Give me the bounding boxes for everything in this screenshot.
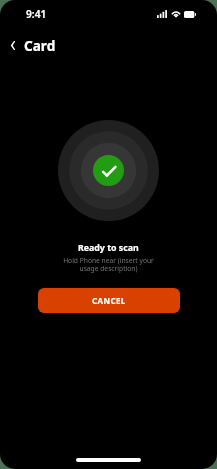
staticText: 9:41	[26, 7, 47, 21]
staticText: CANCEL	[92, 295, 126, 306]
other: Back	[11, 41, 15, 50]
staticText: Hold Phone near (insert your usage descr…	[63, 256, 154, 273]
staticText: Card	[24, 36, 56, 54]
button[interactable]: Back	[5, 32, 62, 58]
button[interactable]: CANCEL	[38, 288, 180, 313]
staticText: Ready to scan	[78, 242, 139, 254]
